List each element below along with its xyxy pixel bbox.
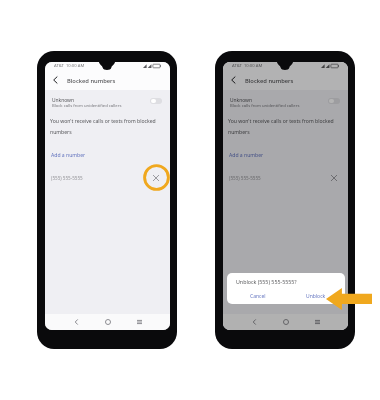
button[interactable]: Recent apps [132,315,146,329]
staticText: Unknown [230,97,252,104]
staticText: (555) 555-5555 [229,175,261,181]
staticText: You won't receive calls or texts from bl… [50,118,156,135]
button[interactable]: Back [247,315,261,329]
staticText: Blocked numbers [245,77,294,85]
button[interactable]: Back [69,315,83,329]
button[interactable]: Unblock [306,291,326,301]
staticText: AT&T 10:00 AM [232,63,263,69]
staticText: Block calls from unidentified callers [230,103,300,109]
button[interactable]: Recent apps [310,315,324,329]
staticText: AT&T 10:00 AM [54,63,85,69]
staticText: (555) 555-5555 [51,175,83,181]
button[interactable]: Home [279,315,293,329]
button[interactable]: Add a number [48,150,89,161]
button[interactable]: Home [101,315,115,329]
staticText: Cancel [250,293,266,300]
button[interactable]: Unblock number [325,169,343,187]
button[interactable]: Add a number [226,150,267,161]
staticText: You won't receive calls or texts from bl… [228,118,334,135]
staticText: Unblock [306,293,326,300]
staticText: Add a number [51,152,86,159]
staticText: Unblock (555) 555-5555? [236,278,297,285]
button[interactable]: Cancel [248,291,267,301]
button[interactable]: Unblock number [147,169,165,187]
button[interactable]: Back [49,73,62,86]
button[interactable]: Unknown [223,95,348,109]
staticText: Unknown [52,97,74,104]
button[interactable]: Back [227,73,240,86]
staticText: Block calls from unidentified callers [52,103,122,109]
button[interactable]: Unknown [45,95,170,109]
staticText: Blocked numbers [67,77,116,85]
staticText: Add a number [229,152,264,159]
